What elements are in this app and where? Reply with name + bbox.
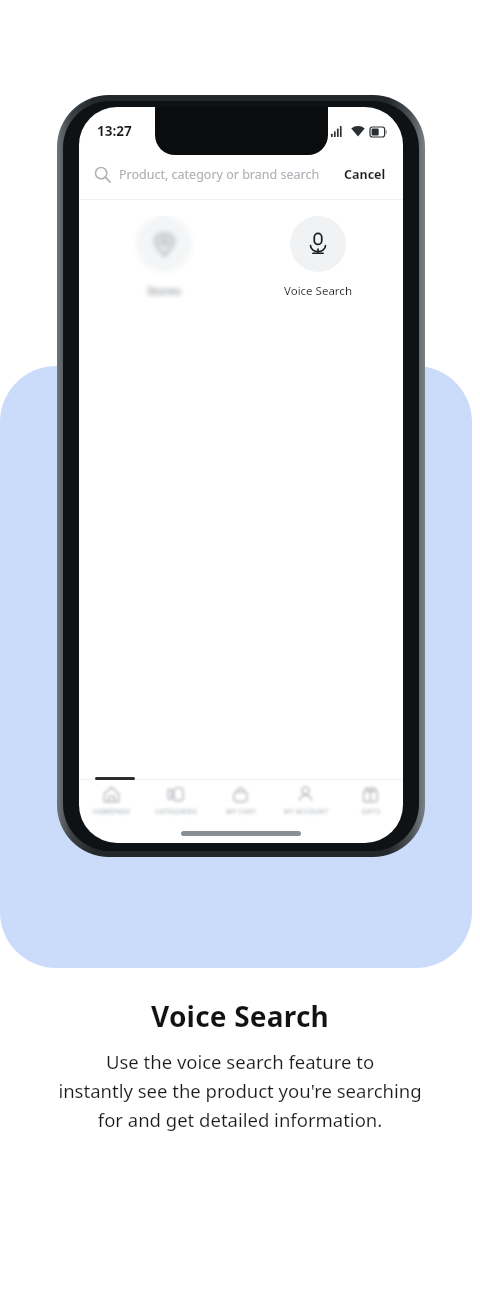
button[interactable]: Voice Search xyxy=(241,216,395,299)
staticText: Cancel xyxy=(344,166,386,183)
staticText: Use the voice search feature to instantl… xyxy=(58,1049,422,1132)
staticText: CATEGORIES xyxy=(155,807,197,816)
button[interactable]: HOMEPAGE xyxy=(79,780,143,821)
staticText: Stores xyxy=(147,283,181,299)
staticText: GIFTS xyxy=(361,807,381,816)
staticText: MY ACCOUNT xyxy=(283,807,329,816)
other: Voice Search xyxy=(290,216,346,272)
button[interactable]: Stores xyxy=(87,216,241,299)
button[interactable]: MY CART xyxy=(208,780,273,821)
staticText: HOMEPAGE xyxy=(92,807,131,816)
staticText: 13:27 xyxy=(97,122,132,140)
staticText: Product, category or brand search xyxy=(119,166,320,183)
staticText: Voice Search xyxy=(284,283,352,299)
staticText: Voice Search xyxy=(151,997,329,1035)
button[interactable]: MY ACCOUNT xyxy=(273,780,338,821)
button[interactable]: Product, category or brand search xyxy=(94,166,342,183)
button[interactable]: GIFTS xyxy=(338,780,403,821)
button[interactable]: Cancel xyxy=(342,160,388,189)
button[interactable]: CATEGORIES xyxy=(143,780,208,821)
staticText: MY CART xyxy=(226,807,256,816)
